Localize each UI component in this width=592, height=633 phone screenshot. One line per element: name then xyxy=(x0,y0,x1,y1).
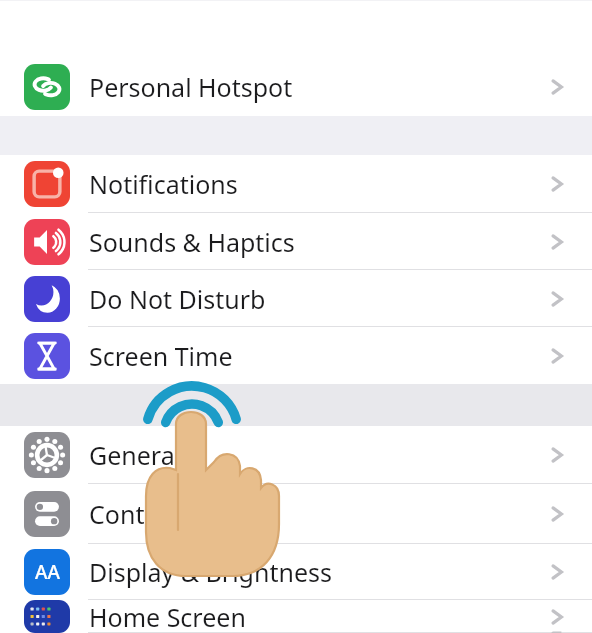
button[interactable]: Screen Time xyxy=(0,327,592,384)
staticText: Do Not Disturb xyxy=(89,282,266,316)
staticText: Sounds & Haptics xyxy=(89,225,295,259)
button[interactable]: Do Not Disturb xyxy=(0,270,592,327)
staticText: Personal Hotspot xyxy=(89,70,293,104)
staticText: AA xyxy=(35,559,60,585)
staticText: Home Screen xyxy=(89,600,246,633)
button[interactable]: AA xyxy=(0,544,592,600)
other: Tap General xyxy=(0,0,592,633)
staticText: Screen Time xyxy=(89,339,233,373)
staticText: Display & Brightness xyxy=(89,555,332,589)
staticText: General xyxy=(89,438,182,472)
button[interactable]: General xyxy=(0,426,592,484)
button[interactable]: Control Centre xyxy=(0,484,592,544)
button[interactable]: Personal Hotspot xyxy=(0,58,592,116)
staticText: Control Centre xyxy=(89,497,261,531)
button[interactable]: Notifications xyxy=(0,155,592,213)
staticText: Notifications xyxy=(89,167,238,201)
button[interactable]: Sounds & Haptics xyxy=(0,213,592,270)
button[interactable]: Home Screen xyxy=(0,600,592,633)
